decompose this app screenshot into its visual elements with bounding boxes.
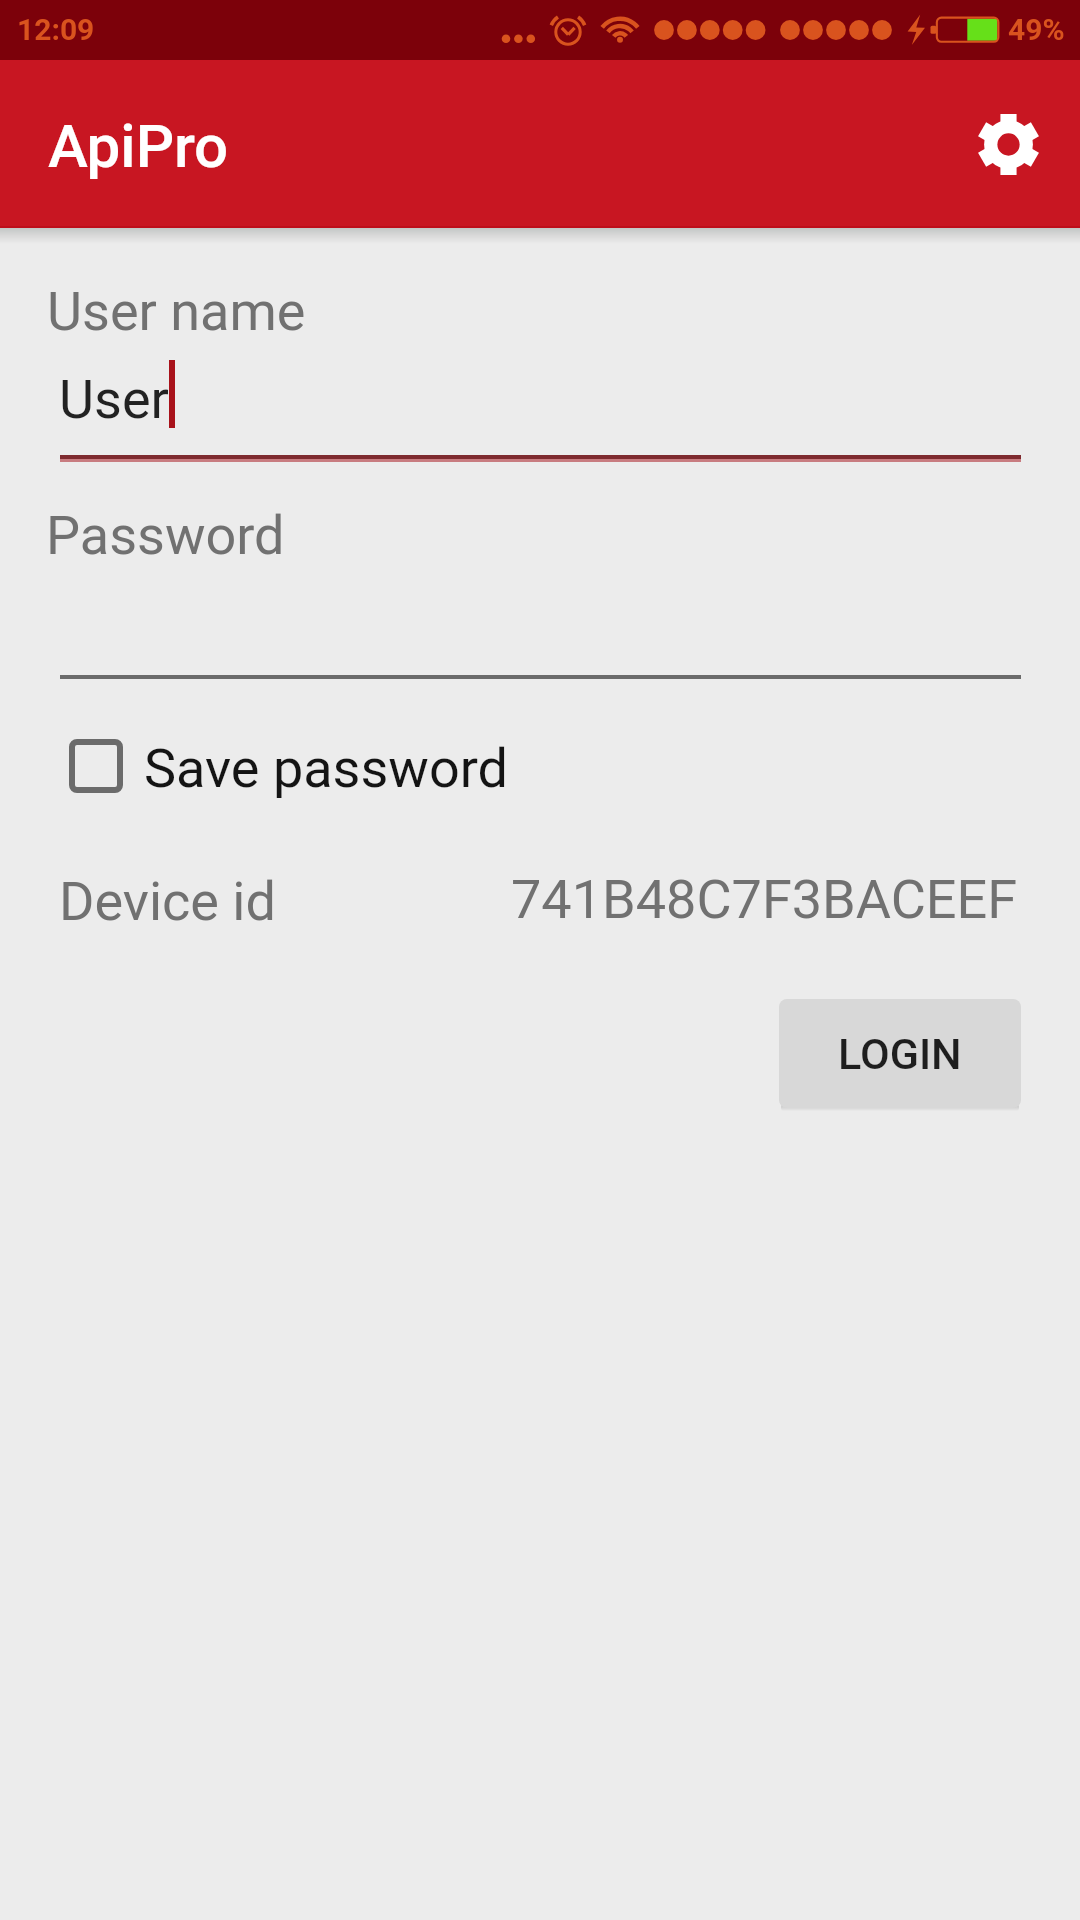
button[interactable]: LOGIN <box>779 999 1021 1108</box>
button[interactable]: Save password <box>57 722 527 810</box>
staticText: 49% <box>1008 12 1065 47</box>
staticText: Save password <box>144 737 508 800</box>
staticText: LOGIN <box>838 1029 962 1079</box>
button[interactable] <box>60 486 1021 680</box>
staticText: 12:09 <box>17 12 95 47</box>
staticText: User name <box>47 280 306 343</box>
staticText: Device id <box>59 870 276 933</box>
staticText: Password <box>46 504 285 567</box>
staticText: 741B48C7F3BACEEF <box>511 868 1018 931</box>
staticText: User <box>59 368 169 431</box>
button[interactable] <box>60 262 1021 462</box>
button[interactable]: Settings <box>964 100 1052 188</box>
staticText: ApiPro <box>48 111 229 181</box>
